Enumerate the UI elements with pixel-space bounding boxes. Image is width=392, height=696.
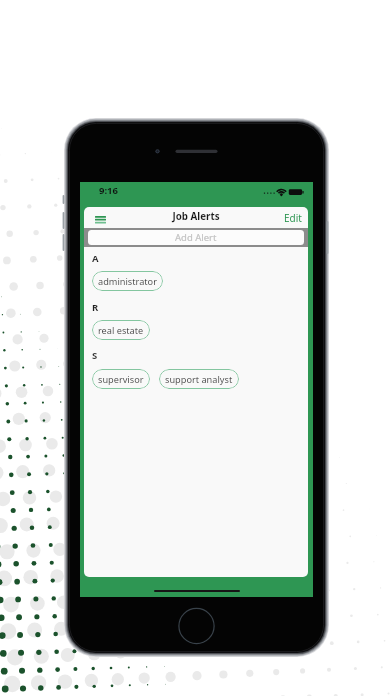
- staticText: A: [92, 252, 99, 265]
- staticText: 9:16: [99, 184, 118, 197]
- button[interactable]: supervisor: [92, 369, 150, 389]
- staticText: Edit: [284, 211, 302, 225]
- button[interactable]: Edit: [284, 211, 302, 225]
- staticText: real estate: [98, 324, 144, 337]
- button[interactable]: Menu: [90, 210, 110, 228]
- staticText: R: [92, 301, 99, 314]
- staticText: Add Alert: [175, 231, 217, 244]
- button[interactable]: real estate: [92, 320, 150, 340]
- staticText: Job Alerts: [84, 210, 308, 223]
- staticText: S: [92, 349, 98, 362]
- staticText: supervisor: [98, 373, 144, 386]
- staticText: support analyst: [165, 373, 233, 386]
- button[interactable]: Add Alert: [84, 228, 308, 247]
- button[interactable]: administrator: [92, 271, 163, 291]
- button[interactable]: support analyst: [159, 369, 239, 389]
- staticText: administrator: [98, 275, 157, 288]
